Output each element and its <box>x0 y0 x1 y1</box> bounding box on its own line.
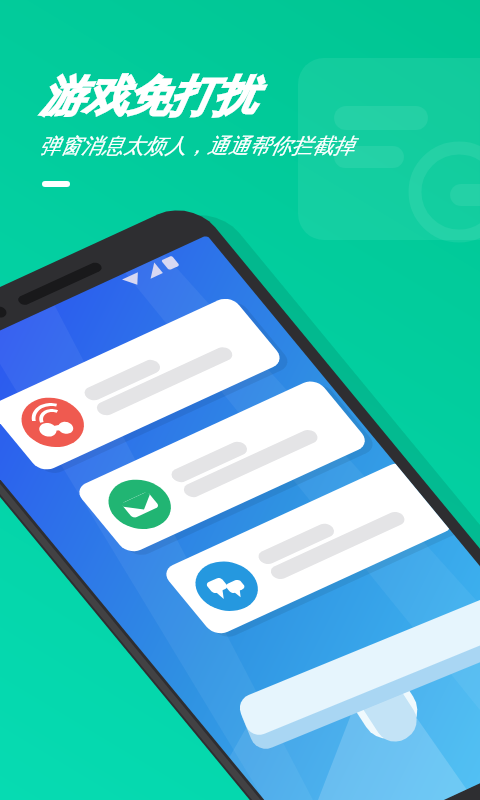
staticText: 游戏免打扰 <box>40 70 255 124</box>
staticText: 弹窗消息太烦人，通通帮你拦截掉 <box>39 133 354 159</box>
